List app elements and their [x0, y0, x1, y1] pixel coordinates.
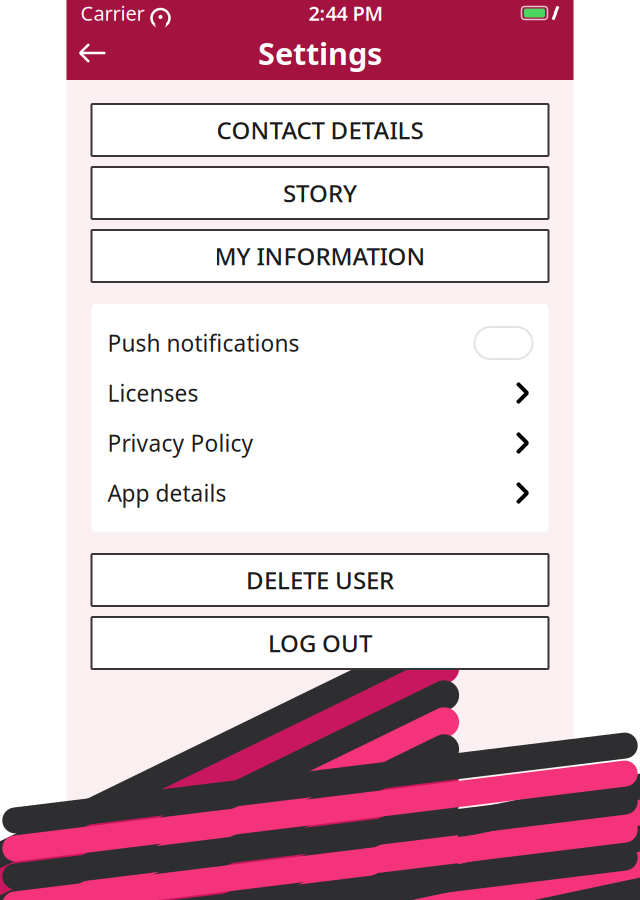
button[interactable]: CONTACT DETAILS [91, 104, 548, 156]
staticText: Settings [258, 33, 382, 73]
button[interactable]: App details [91, 468, 548, 518]
button[interactable]: Licenses [91, 368, 548, 418]
staticText: MY INFORMATION [214, 240, 425, 272]
button[interactable]: Back [66, 30, 118, 76]
staticText: Licenses [107, 378, 198, 408]
staticText: DELETE USER [246, 564, 394, 596]
button[interactable]: LOG OUT [91, 617, 548, 669]
button[interactable]: DELETE USER [91, 554, 548, 606]
staticText: LOG OUT [268, 627, 372, 659]
staticText: Push notifications [107, 328, 299, 358]
staticText: App details [107, 478, 226, 508]
button[interactable]: STORY [91, 167, 548, 219]
staticText: Carrier [80, 0, 144, 26]
staticText: 2:44 PM [308, 0, 383, 26]
button[interactable]: Privacy Policy [91, 418, 548, 468]
button[interactable]: Push notifications [91, 318, 548, 368]
button[interactable]: MY INFORMATION [91, 230, 548, 282]
staticText: Privacy Policy [107, 428, 253, 458]
staticText: STORY [283, 177, 357, 209]
staticText: CONTACT DETAILS [216, 114, 423, 146]
